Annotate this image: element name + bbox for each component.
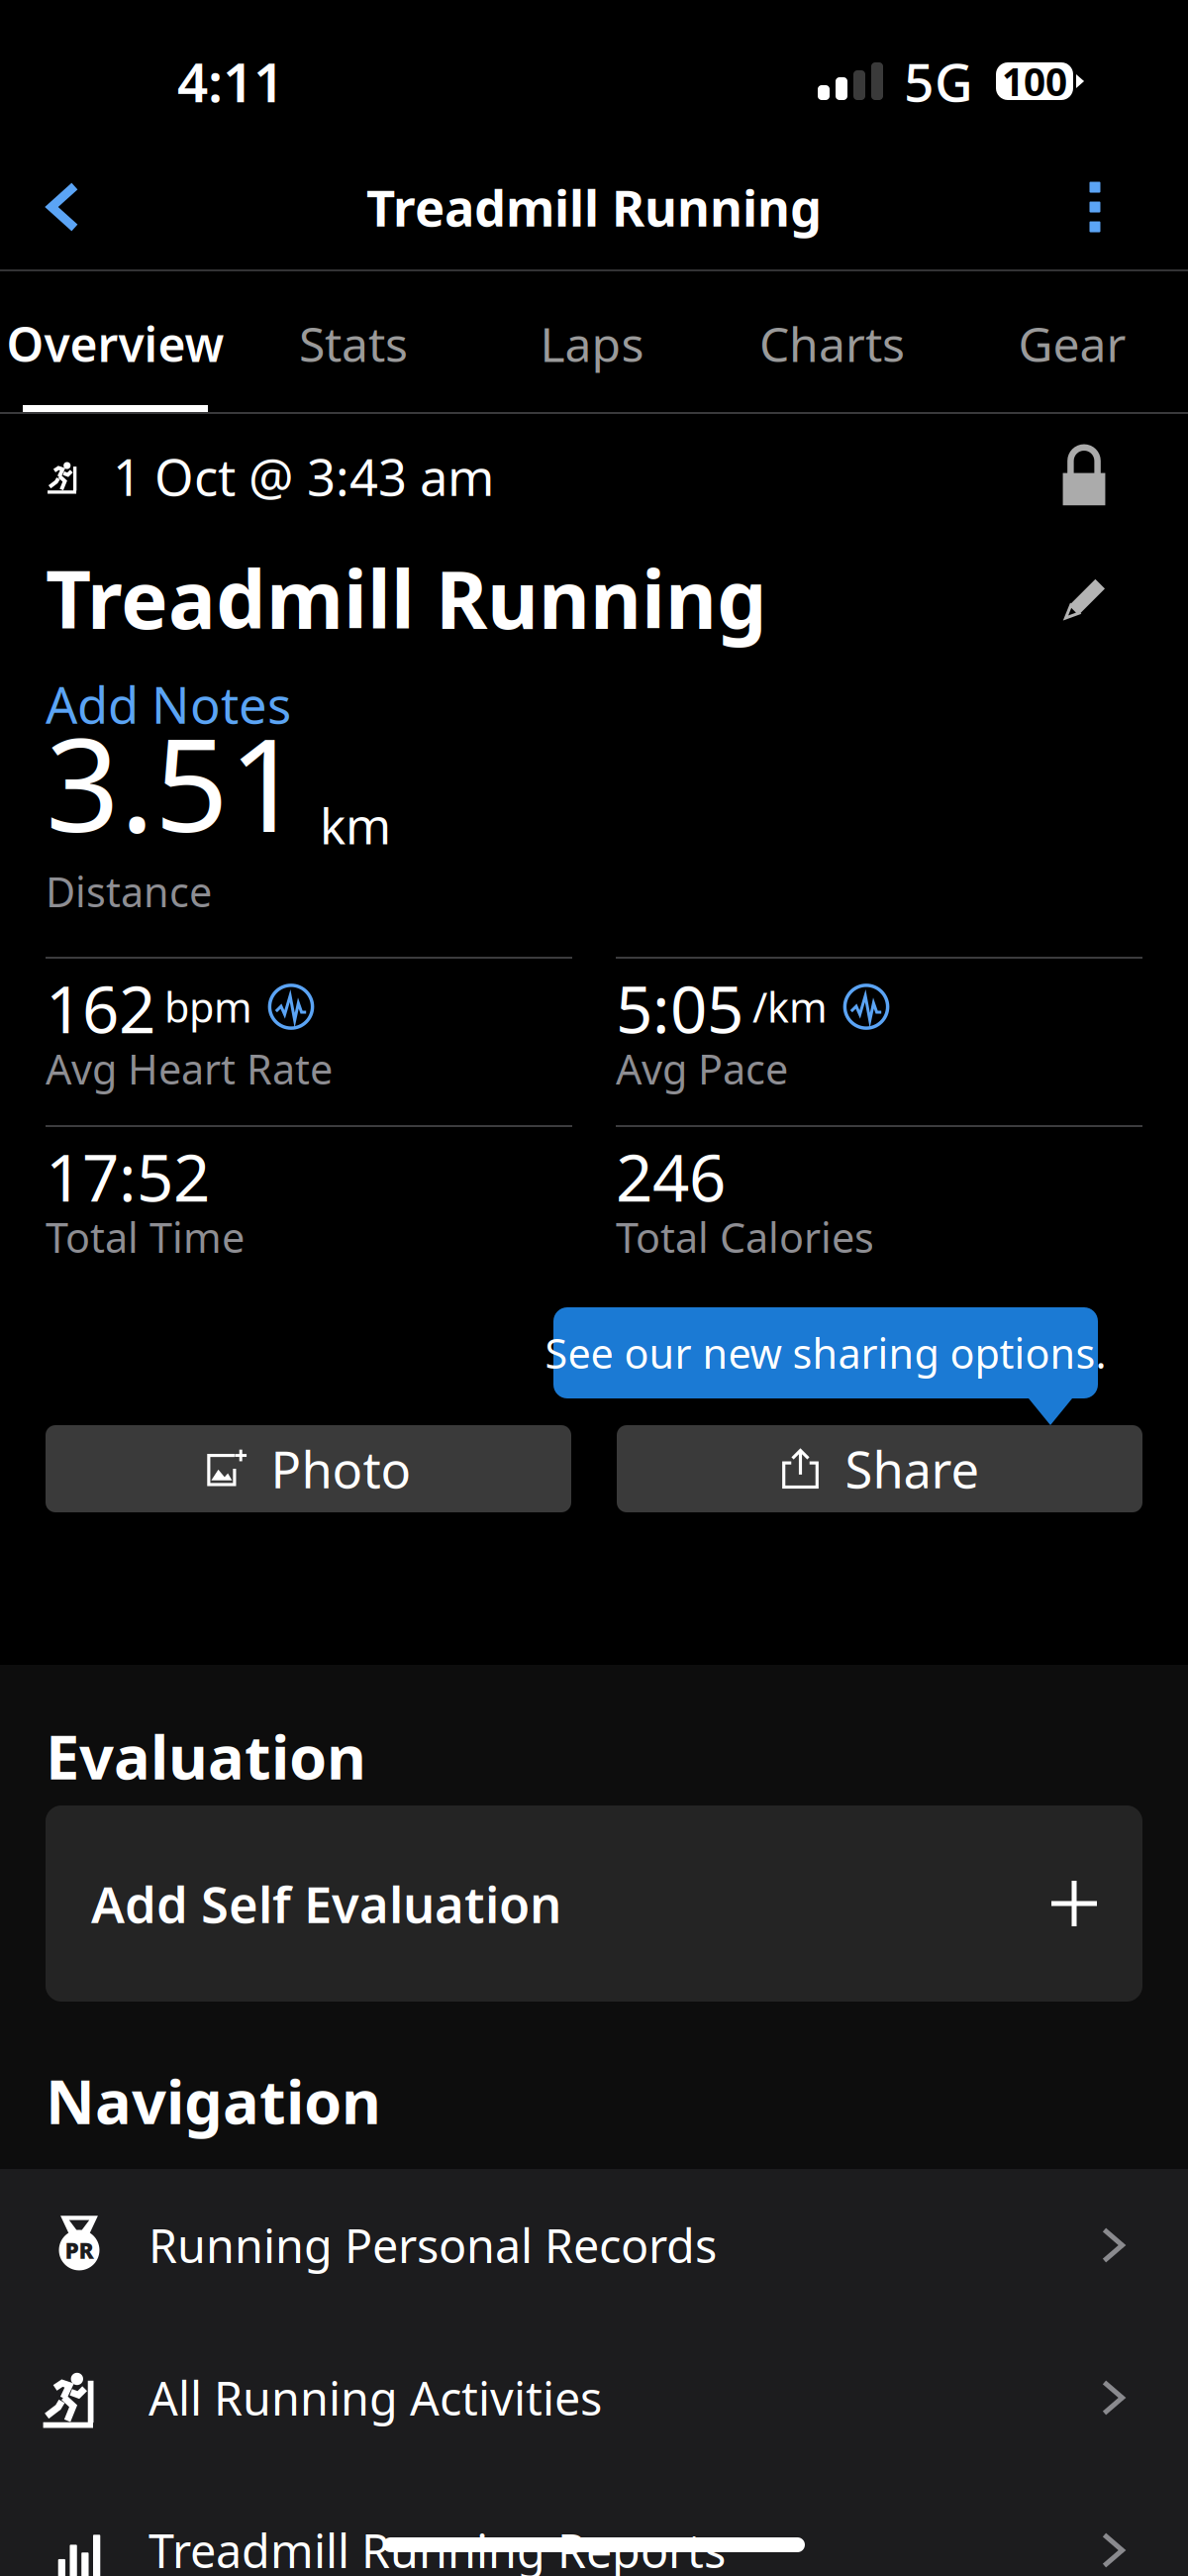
staticText: 162 [46,965,155,1051]
staticText: 5:05 [616,965,743,1051]
staticText: Distance [46,864,212,919]
button[interactable]: Edit name [1054,567,1142,629]
staticText: Total Calories [616,1210,874,1264]
staticText: Gear [1018,312,1126,375]
staticText: Laps [540,312,644,375]
staticText: Avg Heart Rate [46,1041,333,1096]
button[interactable]: Back [0,144,125,270]
staticText: 3.51 [46,696,303,868]
button[interactable]: Share [617,1425,1142,1512]
staticText: 4:11 [177,45,284,117]
staticText: Treadmill Running [46,546,767,651]
staticText: Total Time [46,1210,245,1264]
button[interactable]: Charts [711,271,953,412]
staticText: 1 Oct @ 3:43 am [113,443,494,510]
button[interactable]: Add Notes [0,677,337,731]
staticText: Stats [299,312,408,375]
button[interactable]: Photo [46,1425,571,1512]
button[interactable]: Laps [473,271,711,412]
button[interactable]: Treadmill Running Reports [0,2474,1188,2576]
staticText: Evaluation [46,1716,366,1796]
staticText: bpm [164,980,252,1034]
staticText: Overview [6,312,224,375]
staticText: Running Personal Records [148,2215,717,2276]
staticText: 246 [616,1134,726,1220]
staticText: Navigation [46,2060,381,2141]
staticText: 5G [904,46,973,116]
button[interactable]: Gear [953,271,1188,412]
staticText: 17:52 [46,1134,210,1220]
staticText: Treadmill Running [366,174,822,240]
button[interactable]: Stats [234,271,473,412]
button[interactable]: Add Self Evaluation [46,1805,1142,2002]
staticText: See our new sharing options. [545,1326,1106,1380]
staticText: km [320,793,391,858]
staticText: Add Self Evaluation [91,1870,561,1937]
button[interactable]: All Running Activities [0,2321,1188,2474]
staticText: Share [845,1435,980,1502]
button[interactable]: Overview [0,271,234,412]
staticText: All Running Activities [148,2367,602,2428]
staticText: Charts [759,312,905,375]
staticText: Avg Pace [616,1041,788,1096]
staticText: /km [752,980,828,1034]
staticText: Treadmill Running Reports [148,2520,726,2576]
button[interactable]: PR [0,2169,1188,2321]
staticText: 100 [1002,56,1067,107]
staticText: Add Notes [46,671,291,738]
staticText: Photo [271,1435,411,1502]
button[interactable]: More options [1045,144,1144,270]
staticText: PR [65,2235,94,2265]
